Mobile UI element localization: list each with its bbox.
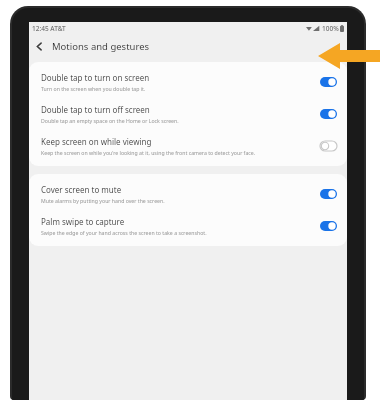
staticText: Palm swipe to capture — [41, 216, 125, 227]
button[interactable]: Keep screen on while viewing — [29, 130, 347, 162]
button[interactable]: Double tap to turn off screen — [29, 98, 347, 130]
button[interactable]: Palm swipe to capture — [29, 210, 347, 242]
button[interactable]: Back — [29, 36, 49, 56]
staticText: Double tap to turn on screen — [41, 72, 150, 83]
staticText: Swipe the edge of your hand across the s… — [41, 229, 207, 236]
staticText: Motions and gestures — [52, 40, 150, 53]
staticText: Double tap an empty space on the Home or… — [41, 117, 179, 124]
button[interactable]: Toggle on — [320, 77, 337, 87]
staticText: Keep screen on while viewing — [41, 136, 152, 147]
staticText: Cover screen to mute — [41, 184, 122, 195]
staticText: Mute alarms by putting your hand over th… — [41, 197, 165, 204]
button[interactable]: Double tap to turn on screen — [29, 66, 347, 98]
staticText: 12:45 AT&T — [32, 24, 66, 33]
button[interactable]: Cover screen to mute — [29, 178, 347, 210]
button[interactable]: Toggle on — [320, 189, 337, 199]
button[interactable]: Toggle off — [320, 141, 337, 151]
button[interactable]: Toggle on — [320, 109, 337, 119]
button[interactable]: Toggle on — [320, 221, 337, 231]
staticText: 100% — [322, 24, 339, 33]
staticText: Keep the screen on while you're looking … — [41, 149, 256, 156]
staticText: Turn on the screen when you double tap i… — [41, 85, 146, 92]
staticText: Double tap to turn off screen — [41, 104, 150, 115]
